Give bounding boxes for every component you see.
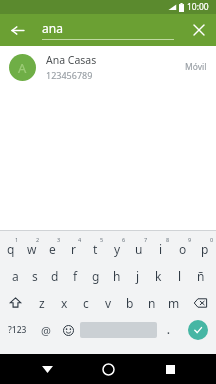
button[interactable]: Emoji [57, 316, 80, 344]
button[interactable]: Backspace [185, 289, 216, 316]
button[interactable]: Done [180, 316, 216, 344]
button[interactable]: h [106, 262, 127, 289]
staticText: g [92, 268, 100, 284]
staticText: r [71, 241, 76, 257]
staticText: x [61, 295, 68, 311]
staticText: p [201, 241, 209, 257]
staticText: e [49, 241, 56, 257]
button[interactable]: n [141, 289, 163, 316]
button[interactable]: z [31, 289, 53, 316]
staticText: o [179, 241, 187, 257]
button[interactable]: c [75, 289, 97, 316]
staticText: n [148, 295, 156, 311]
staticText: 0 [210, 236, 214, 243]
staticText: q [7, 241, 15, 257]
button[interactable]: ?123 [0, 316, 34, 344]
staticText: ?123 [8, 324, 27, 336]
staticText: c [83, 295, 89, 311]
staticText: t [93, 241, 98, 257]
staticText: 9 [188, 236, 192, 243]
staticText: 8 [166, 236, 170, 243]
button[interactable]: u [128, 235, 150, 262]
staticText: w [27, 241, 37, 257]
button[interactable]: g [85, 262, 106, 289]
button[interactable]: Recent apps [155, 354, 185, 384]
button[interactable]: Home [93, 354, 123, 384]
button[interactable]: A [0, 46, 216, 88]
button[interactable]: j [127, 262, 148, 289]
button[interactable]: . [157, 316, 180, 344]
staticText: y [114, 241, 121, 257]
button[interactable]: d [45, 262, 65, 289]
button[interactable]: q [0, 235, 21, 262]
staticText: j [136, 268, 140, 284]
staticText: Ana Casas [46, 53, 97, 67]
staticText: . [167, 323, 170, 337]
button[interactable]: v [97, 289, 119, 316]
staticText: Móvil [185, 61, 207, 73]
staticText: i [159, 241, 163, 257]
button[interactable]: ana [42, 20, 174, 40]
staticText: m [168, 295, 180, 311]
staticText: v [105, 295, 112, 311]
button[interactable]: At sign [34, 316, 57, 344]
staticText: 3 [57, 236, 61, 243]
button[interactable]: l [169, 262, 190, 289]
staticText: 2 [36, 236, 40, 243]
button[interactable]: x [53, 289, 75, 316]
button[interactable]: i [150, 235, 172, 262]
button[interactable]: Shift [0, 289, 31, 316]
staticText: A [18, 59, 27, 77]
staticText: 6 [122, 236, 126, 243]
staticText: f [73, 268, 78, 284]
staticText: l [178, 268, 182, 284]
staticText: 4 [78, 236, 82, 243]
staticText: 7 [144, 236, 148, 243]
button[interactable]: s [25, 262, 45, 289]
staticText: s [32, 268, 38, 284]
staticText: 5 [100, 236, 104, 243]
button[interactable]: Back [6, 19, 28, 41]
button[interactable]: t [84, 235, 106, 262]
button[interactable]: b [119, 289, 141, 316]
button[interactable]: y [106, 235, 128, 262]
button[interactable]: m [163, 289, 185, 316]
staticText: ñ [197, 268, 205, 284]
staticText: @ [41, 323, 51, 338]
staticText: 123456789 [46, 69, 93, 81]
button[interactable]: r [63, 235, 84, 262]
button[interactable]: a [5, 262, 25, 289]
staticText: d [51, 268, 59, 284]
staticText: h [113, 268, 121, 284]
staticText: k [155, 268, 162, 284]
button[interactable]: ñ [190, 262, 211, 289]
button[interactable]: Hide keyboard [32, 354, 62, 384]
button[interactable]: f [65, 262, 85, 289]
staticText: z [39, 295, 45, 311]
button[interactable]: o [172, 235, 194, 262]
staticText: 1 [15, 236, 19, 243]
button[interactable]: p [194, 235, 216, 262]
button[interactable]: e [42, 235, 63, 262]
staticText: ana [42, 20, 63, 36]
button[interactable]: Clear search [188, 19, 210, 41]
button[interactable]: w [21, 235, 42, 262]
staticText: b [126, 295, 134, 311]
staticText: 10:00 [187, 1, 209, 13]
button[interactable]: k [148, 262, 169, 289]
staticText: a [12, 268, 19, 284]
staticText: u [135, 241, 143, 257]
